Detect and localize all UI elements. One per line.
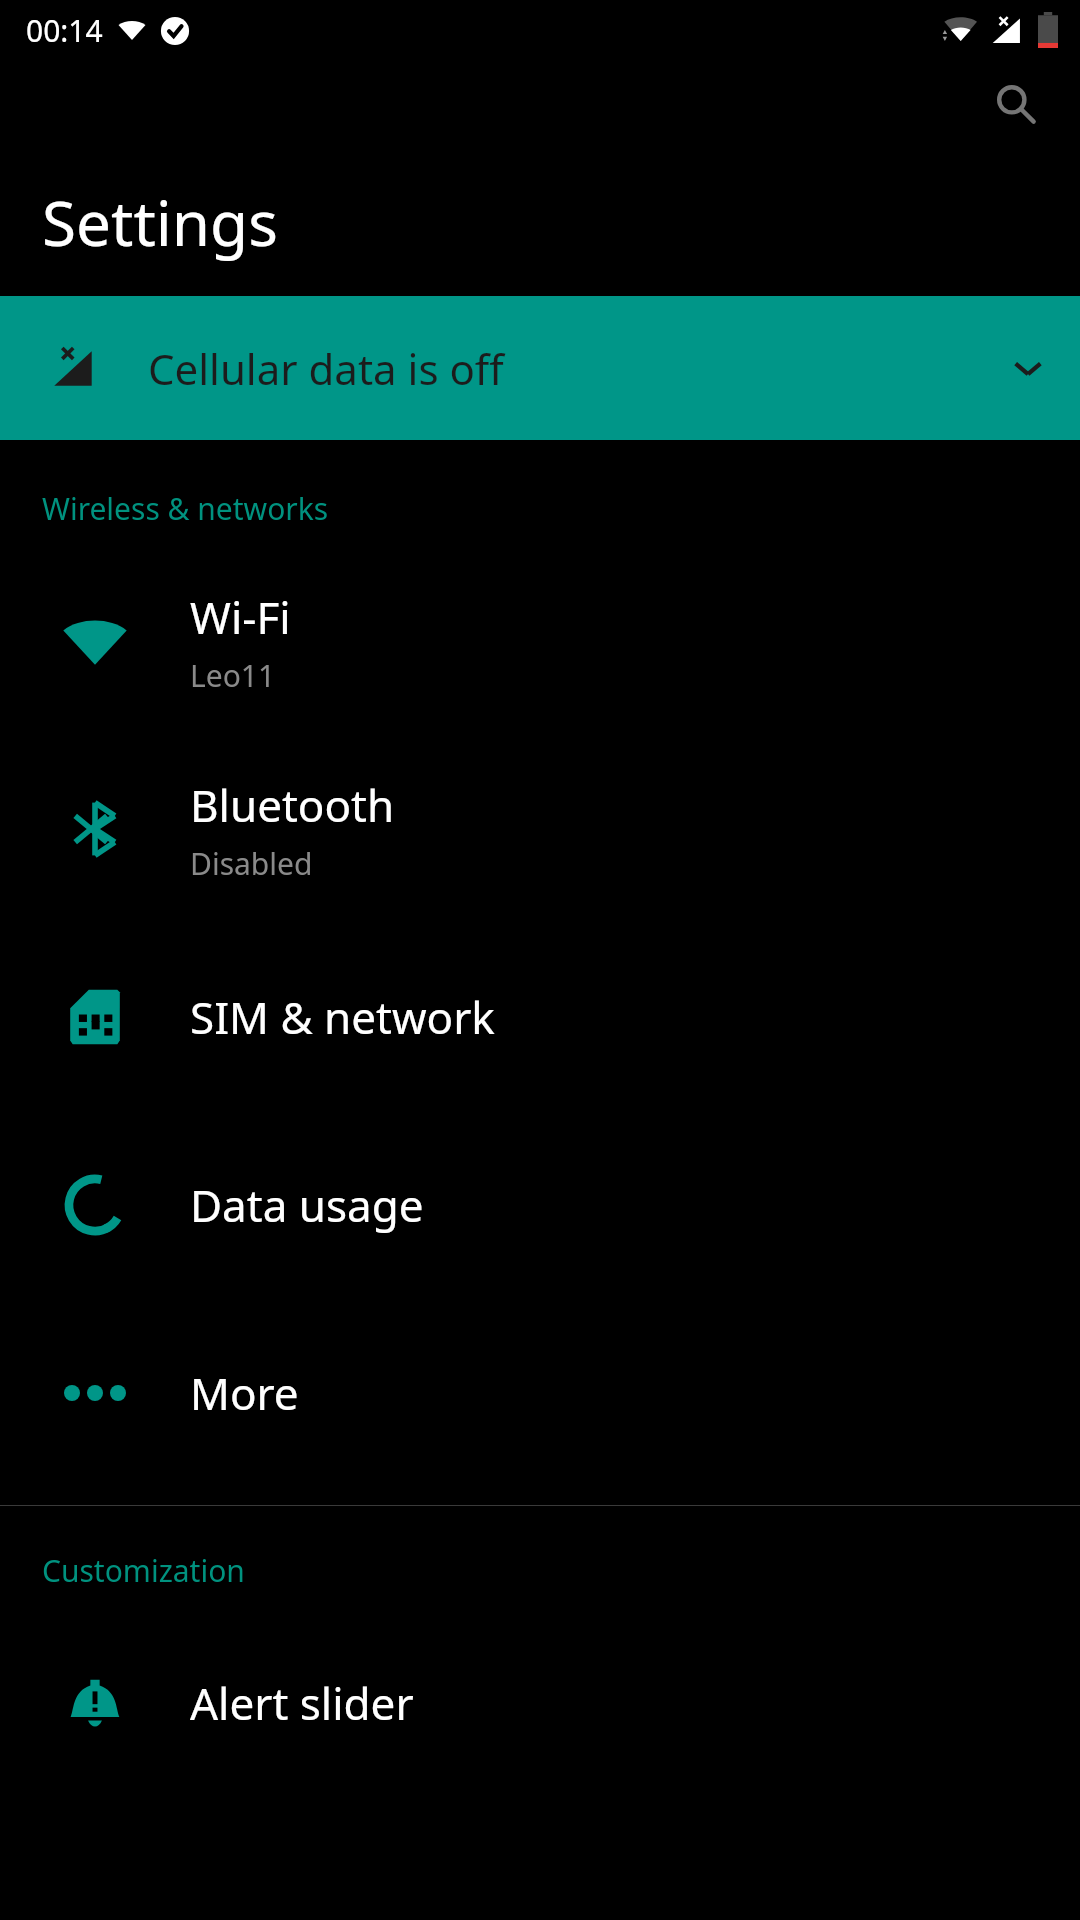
button[interactable]: Bluetooth: [0, 735, 1080, 923]
staticText: Settings: [42, 180, 278, 264]
staticText: SIM & network: [190, 987, 495, 1047]
staticText: Disabled: [190, 843, 313, 884]
button[interactable]: Search: [978, 66, 1054, 142]
button[interactable]: SIM & network: [0, 923, 1080, 1111]
button[interactable]: Cellular data is off: [0, 296, 1080, 440]
button[interactable]: More: [0, 1299, 1080, 1487]
button[interactable]: Alert slider: [0, 1609, 1080, 1797]
button[interactable]: Data usage: [0, 1111, 1080, 1299]
button[interactable]: Wi-Fi: [0, 547, 1080, 735]
staticText: Data usage: [190, 1175, 424, 1235]
staticText: 00:14: [26, 10, 103, 51]
staticText: Wi-Fi: [190, 587, 291, 647]
staticText: Bluetooth: [190, 775, 395, 835]
staticText: More: [190, 1363, 299, 1423]
staticText: Leo11: [190, 655, 276, 696]
staticText: Alert slider: [190, 1673, 414, 1733]
staticText: Wireless & networks: [42, 488, 329, 529]
staticText: Customization: [42, 1550, 245, 1591]
staticText: Cellular data is off: [148, 340, 976, 397]
